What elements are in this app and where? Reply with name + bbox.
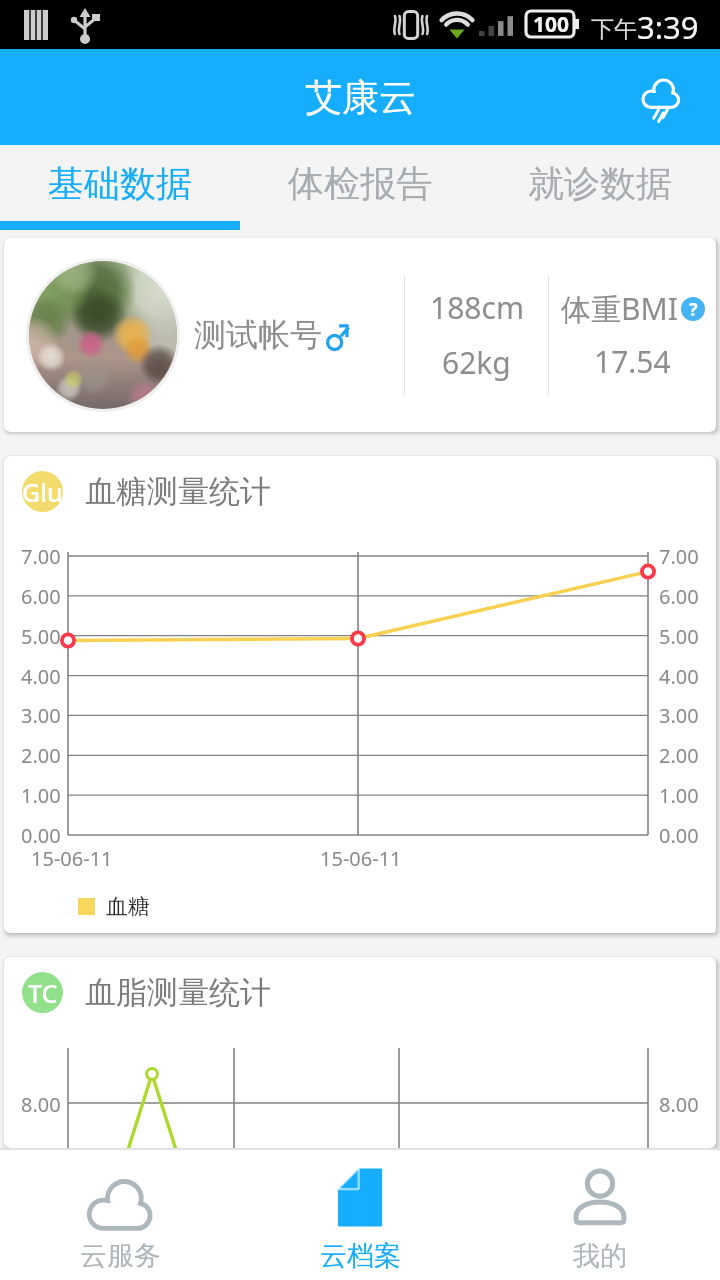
staticText: 15-06-11 — [31, 845, 113, 872]
staticText: 云服务 — [80, 1239, 161, 1273]
staticText: 我的 — [573, 1239, 627, 1273]
staticText: Glu — [22, 475, 63, 509]
staticText: 15-06-11 — [320, 845, 402, 872]
staticText: 1.00 — [21, 782, 61, 809]
staticText: 5.00 — [659, 623, 699, 650]
staticText: 血糖测量统计 — [85, 472, 271, 511]
staticText: 6.00 — [659, 583, 699, 610]
staticText: 下午 — [591, 15, 637, 44]
staticText: 就诊数据 — [528, 161, 672, 206]
staticText: 艾康云 — [305, 74, 416, 121]
staticText: 8.00 — [659, 1091, 699, 1118]
staticText: 4.00 — [659, 663, 699, 690]
button[interactable]: 基础数据 — [0, 145, 240, 221]
staticText: 云档案 — [320, 1239, 401, 1273]
staticText: 2.00 — [659, 742, 699, 769]
staticText: 4.00 — [21, 663, 61, 690]
staticText: 17.54 — [594, 341, 671, 382]
button[interactable]: 测试帐号 — [4, 238, 716, 432]
staticText: 体重BMI — [561, 288, 678, 329]
staticText: 基础数据 — [48, 161, 192, 206]
button[interactable]: 我的 — [480, 1150, 720, 1280]
staticText: 8.00 — [21, 1091, 61, 1118]
staticText: 体检报告 — [288, 161, 432, 206]
button[interactable]: 云服务 — [0, 1150, 240, 1280]
staticText: 100 — [533, 10, 570, 39]
staticText: 1.00 — [659, 782, 699, 809]
staticText: 0.00 — [21, 822, 61, 849]
staticText: 7.00 — [659, 543, 699, 570]
button[interactable]: 云档案 — [240, 1150, 480, 1280]
staticText: 188cm — [430, 287, 524, 328]
staticText: 5.00 — [21, 623, 61, 650]
staticText: TC — [28, 976, 58, 1010]
staticText: 3.00 — [659, 702, 699, 729]
staticText: 7.00 — [21, 543, 61, 570]
staticText: 血脂测量统计 — [85, 973, 271, 1012]
staticText: 测试帐号 — [194, 315, 322, 355]
button[interactable]: Weather — [630, 66, 692, 128]
staticText: 6.00 — [21, 583, 61, 610]
staticText: 血糖 — [106, 893, 150, 921]
staticText: 3:39 — [637, 6, 699, 48]
staticText: 0.00 — [659, 822, 699, 849]
button[interactable]: 体检报告 — [240, 145, 480, 221]
staticText: ? — [689, 297, 698, 321]
staticText: 2.00 — [21, 742, 61, 769]
staticText: 3.00 — [21, 702, 61, 729]
button[interactable]: 就诊数据 — [480, 145, 720, 221]
staticText: 62kg — [442, 342, 511, 383]
